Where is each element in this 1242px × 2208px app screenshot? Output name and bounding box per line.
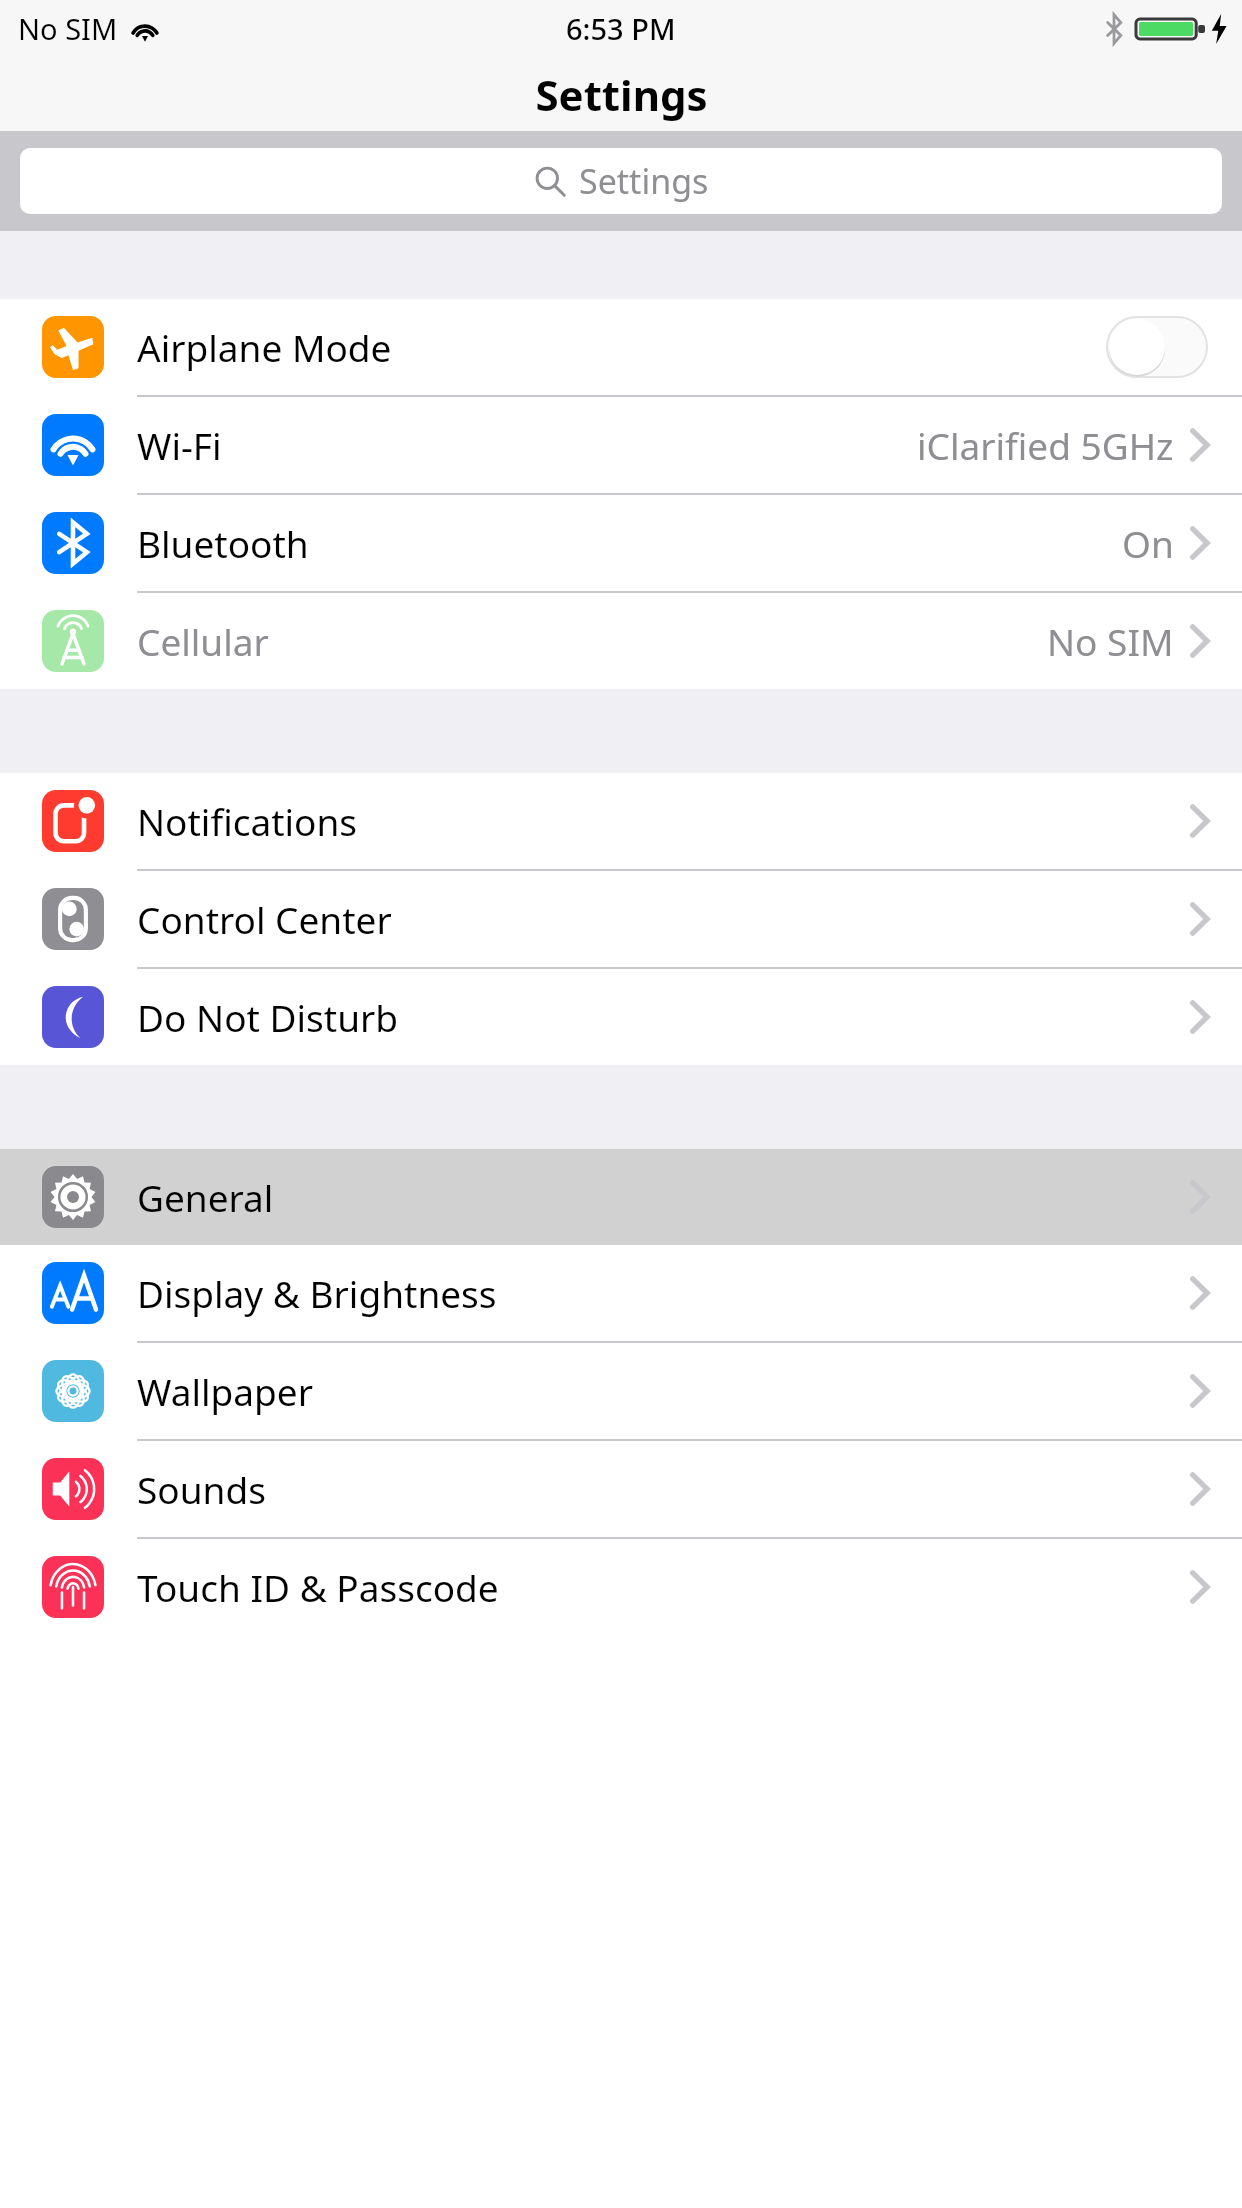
button[interactable]: Display & Brightness <box>0 1245 1242 1341</box>
staticText: Wi-Fi <box>137 420 222 470</box>
staticText: General <box>137 1172 274 1222</box>
button[interactable]: Airplane Mode <box>0 299 1242 395</box>
staticText: Display & Brightness <box>137 1268 497 1318</box>
staticText: Control Center <box>137 894 392 944</box>
staticText: No SIM <box>1047 616 1174 666</box>
button[interactable]: Airplane Mode toggle <box>1106 316 1208 378</box>
staticText: Touch ID & Passcode <box>137 1562 499 1612</box>
button[interactable]: Touch ID & Passcode <box>0 1539 1242 1635</box>
staticText: Do Not Disturb <box>137 992 399 1042</box>
button[interactable]: Wi-Fi <box>0 397 1242 493</box>
staticText: Sounds <box>137 1464 266 1514</box>
staticText: Airplane Mode <box>137 322 392 372</box>
button[interactable]: General <box>0 1149 1242 1245</box>
button[interactable]: Do Not Disturb <box>0 969 1242 1065</box>
button[interactable]: Wallpaper <box>0 1343 1242 1439</box>
staticText: iClarified 5GHz <box>917 420 1174 470</box>
staticText: Settings <box>535 66 708 123</box>
staticText: Wallpaper <box>137 1366 313 1416</box>
button[interactable]: Sounds <box>0 1441 1242 1537</box>
staticText: On <box>1122 518 1174 568</box>
button[interactable]: Control Center <box>0 871 1242 967</box>
button[interactable]: Notifications <box>0 773 1242 869</box>
staticText: Notifications <box>137 796 358 846</box>
button[interactable]: Settings <box>20 148 1222 214</box>
staticText: Bluetooth <box>137 518 309 568</box>
button[interactable]: Cellular <box>0 593 1242 689</box>
button[interactable]: Bluetooth <box>0 495 1242 591</box>
staticText: Cellular <box>137 616 269 666</box>
staticText: 6:53 PM <box>566 9 676 48</box>
staticText: No SIM <box>18 9 118 48</box>
staticText: Settings <box>579 158 709 204</box>
